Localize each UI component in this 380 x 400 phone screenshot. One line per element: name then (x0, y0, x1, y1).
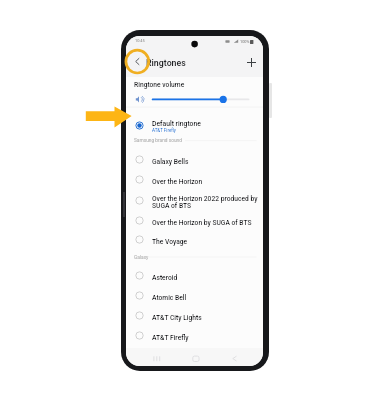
staticText: 10:45 (135, 38, 145, 43)
staticText: 100% (240, 39, 250, 44)
button[interactable]: Ringtones (146, 58, 186, 68)
button[interactable]: The Voyage (126, 230, 263, 250)
staticText: Galaxy Bells (152, 158, 189, 166)
staticText: SUGA of BTS (152, 202, 192, 210)
staticText: AT&T Firefly (152, 128, 176, 133)
button[interactable]: Over the Horizon (126, 170, 263, 190)
button[interactable]: Add ringtone (244, 55, 259, 70)
button[interactable]: AT&T Firefly (126, 326, 263, 346)
button[interactable]: Atomic Bell (126, 286, 263, 306)
staticText: Atomic Bell (152, 294, 187, 302)
staticText: Over the Horizon 2022 produced by (152, 195, 258, 203)
staticText: Over the Horizon by SUGA of BTS (152, 219, 252, 227)
staticText: Asteroid (152, 274, 178, 282)
staticText: AT&T Firefly (152, 334, 189, 342)
staticText: Ringtone volume (134, 81, 185, 89)
staticText: AT&T City Lights (152, 314, 202, 322)
button[interactable]: Default ringtone (126, 110, 263, 135)
button[interactable]: AT&T City Lights (126, 306, 263, 326)
staticText: Ringtones (146, 58, 186, 68)
staticText: Default ringtone (152, 120, 201, 128)
staticText: Samsung brand sound (134, 138, 182, 144)
button[interactable]: Asteroid (126, 266, 263, 286)
button[interactable]: Galaxy Bells (126, 150, 263, 170)
button[interactable]: Navigate up (130, 54, 145, 69)
staticText: Over the Horizon (152, 178, 203, 186)
button[interactable]: Over the Horizon by SUGA of BTS (126, 211, 263, 231)
staticText: Galaxy (134, 255, 149, 261)
staticText: The Voyage (152, 238, 188, 246)
button[interactable]: Over the Horizon 2022 produced by (126, 190, 263, 211)
